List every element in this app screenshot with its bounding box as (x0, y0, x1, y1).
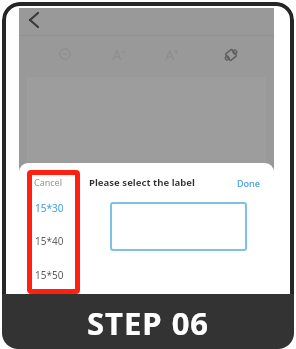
button[interactable]: 15*40 (25, 230, 77, 252)
button[interactable]: 15*50 (25, 264, 77, 286)
button[interactable]: Transform (221, 45, 241, 65)
button[interactable]: Please select the label (85, 172, 199, 192)
button[interactable]: Done (231, 173, 266, 193)
button[interactable]: Label preview (110, 202, 247, 251)
staticText: Please select the label (89, 176, 195, 189)
button[interactable]: Back (20, 6, 48, 34)
staticText: 15*30 (35, 201, 64, 215)
staticText: Done (237, 177, 260, 189)
staticText: STEP 06 (87, 302, 210, 344)
staticText: 15*50 (35, 268, 64, 282)
staticText: Cancel (34, 176, 63, 188)
staticText: 15*40 (35, 234, 64, 248)
button[interactable]: Cancel (29, 172, 81, 192)
button[interactable]: 15*30 (25, 197, 77, 219)
